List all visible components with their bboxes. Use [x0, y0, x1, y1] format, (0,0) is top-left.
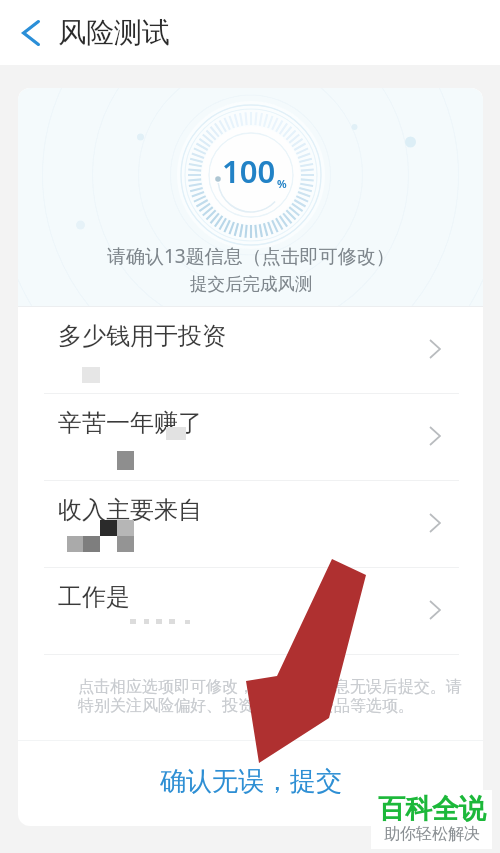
staticText: 100 [222, 150, 276, 192]
staticText: 百科全说 [378, 792, 486, 826]
button[interactable]: 确认无误，提交 [18, 741, 483, 826]
staticText: 点击相应选项即可修改，确认所有信息无误后提交。请特别关注风险偏好、投资目标、投资… [78, 677, 467, 716]
staticText: 确认无误，提交 [160, 765, 342, 798]
staticText: 多少钱用于投资 [58, 321, 226, 351]
button[interactable]: 多少钱用于投资 [18, 307, 483, 394]
button[interactable]: 工作是 [18, 568, 483, 655]
staticText: 请确认13题信息（点击即可修改） [107, 243, 395, 269]
staticText: 辛苦一年赚了 [58, 408, 202, 438]
button[interactable]: 辛苦一年赚了 [18, 394, 483, 481]
staticText: 提交后完成风测 [190, 273, 313, 295]
staticText: 风险测试 [58, 15, 170, 50]
button[interactable]: Back [7, 9, 55, 57]
staticText: 收入主要来自 [58, 495, 202, 525]
button[interactable]: 收入主要来自 [18, 481, 483, 568]
staticText: 工作是 [58, 582, 130, 612]
staticText: 助你轻松解决 [384, 824, 480, 844]
staticText: % [277, 176, 287, 191]
